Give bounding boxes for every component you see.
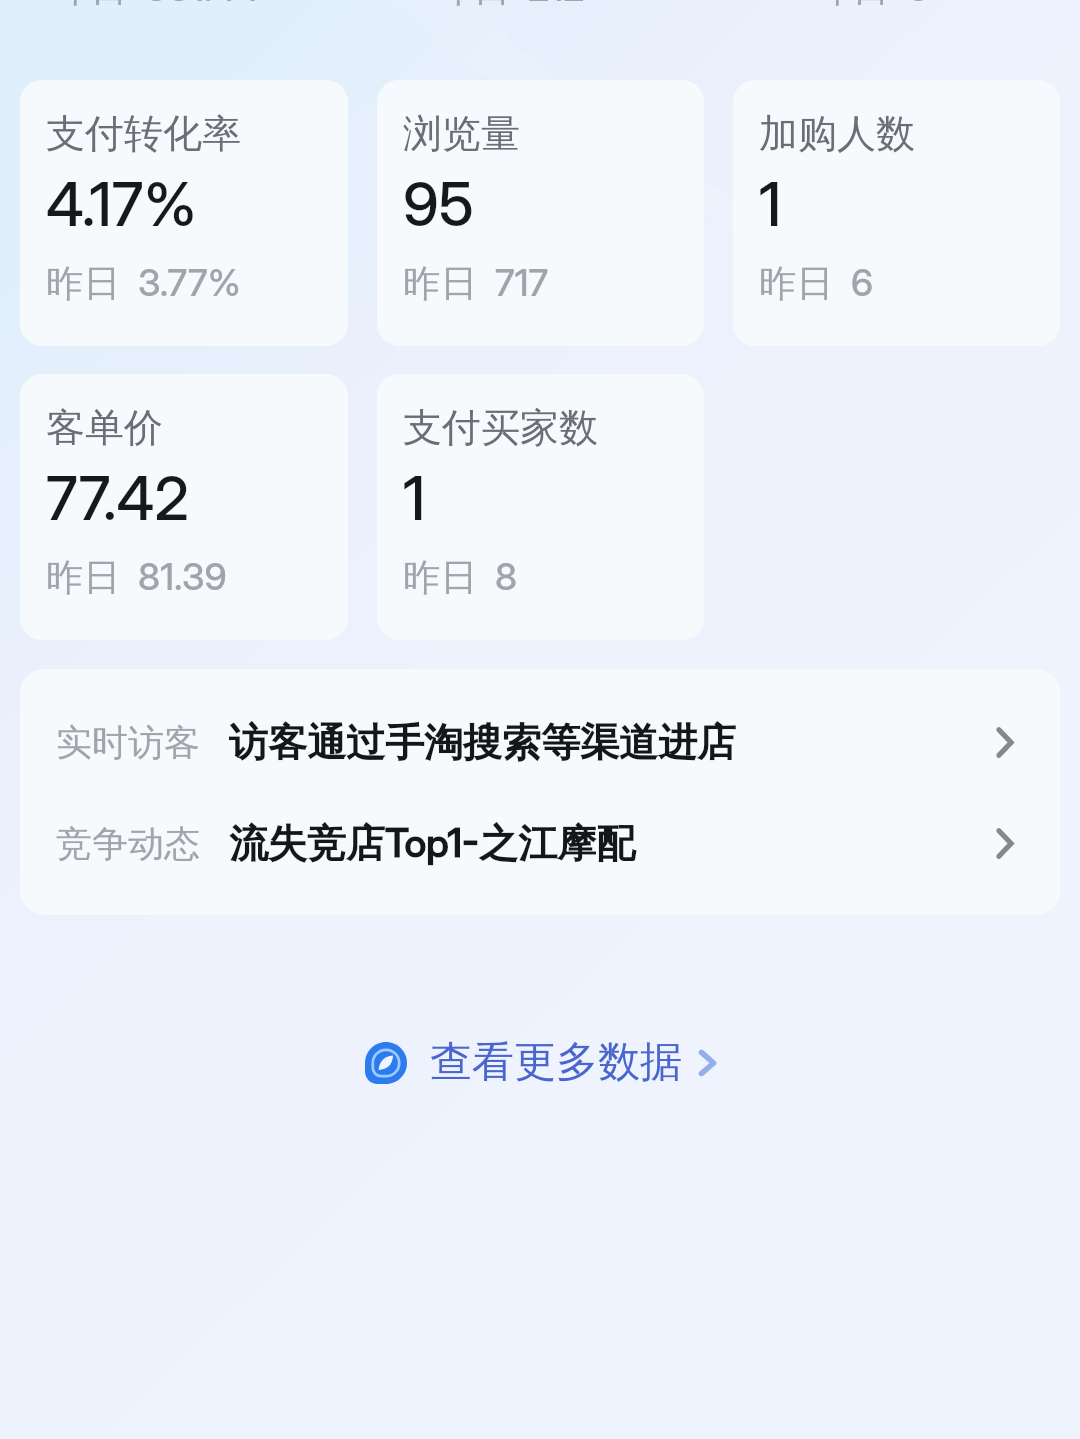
staticText: 95 [403, 168, 474, 241]
staticText: 昨日 212 [436, 0, 585, 12]
staticText: 支付买家数 [403, 403, 598, 452]
staticText: 查看更多数据 [430, 1036, 682, 1089]
button[interactable]: 加购人数 [733, 80, 1060, 346]
staticText: 流失竞店Top1-之江摩配 [229, 819, 635, 868]
staticText: 1 [759, 168, 782, 241]
button[interactable]: More data [0, 1018, 1080, 1107]
staticText: 支付转化率 [46, 109, 241, 158]
staticText: 昨日 8 [403, 554, 518, 601]
staticText: 昨日 3.77% [46, 260, 241, 307]
staticText: 1 [403, 462, 426, 535]
staticText: 昨日 6 [759, 260, 874, 307]
staticText: 访客通过手淘搜索等渠道进店 [229, 718, 736, 767]
staticText: 竞争动态 [56, 821, 200, 866]
staticText: 昨日 717 [403, 260, 549, 307]
button[interactable]: 浏览量 [377, 80, 704, 346]
button[interactable]: 客单价 [20, 374, 348, 640]
staticText: 昨日 6 [815, 0, 930, 12]
staticText: 昨日 331.44 [53, 0, 260, 12]
button[interactable]: 支付买家数 [377, 374, 704, 640]
staticText: 4.17% [46, 168, 197, 241]
button[interactable]: 竞争动态 [20, 793, 1060, 893]
button[interactable]: 实时访客 [20, 692, 1060, 792]
staticText: 实时访客 [56, 720, 200, 765]
staticText: 昨日 81.39 [46, 554, 227, 601]
other: More data [365, 1042, 407, 1084]
staticText: 加购人数 [759, 109, 915, 158]
staticText: 77.42 [46, 462, 189, 535]
button[interactable]: 支付转化率 [20, 80, 348, 346]
staticText: 浏览量 [403, 109, 520, 158]
staticText: 客单价 [46, 403, 163, 452]
